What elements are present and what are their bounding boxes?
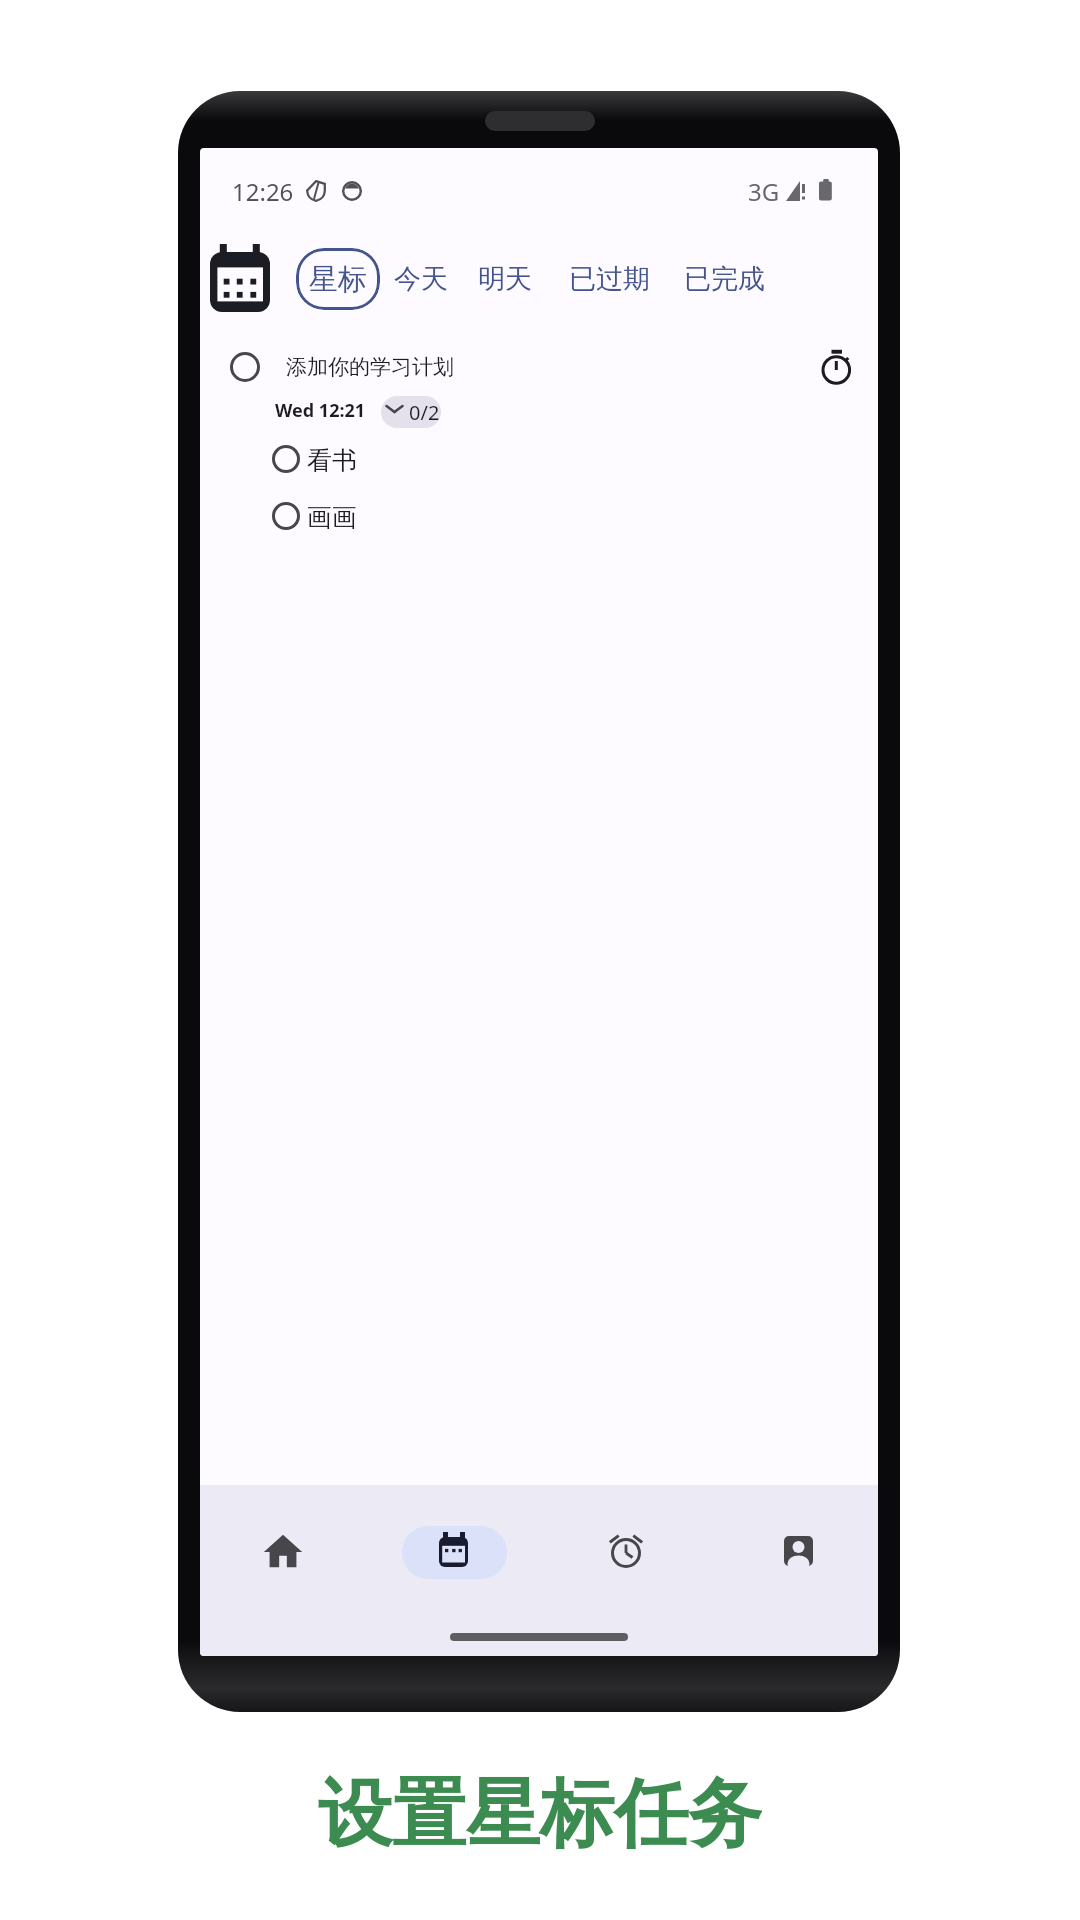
staticText: 3G — [748, 175, 780, 205]
button[interactable] — [402, 1526, 507, 1579]
button[interactable] — [260, 1529, 306, 1575]
button[interactable]: 添加你的学习计划 — [286, 352, 586, 382]
staticText: 0/2 — [409, 399, 440, 426]
staticText: 12:26 — [232, 175, 294, 205]
button[interactable]: 画画 — [307, 502, 427, 530]
button[interactable]: 今天 — [381, 248, 461, 310]
staticText: 添加你的学习计划 — [286, 354, 454, 380]
button[interactable] — [608, 1534, 644, 1570]
button[interactable] — [784, 1536, 813, 1566]
button[interactable]: 星标 — [296, 248, 380, 310]
button[interactable] — [272, 502, 300, 530]
button[interactable]: 明天 — [465, 248, 545, 310]
button[interactable] — [230, 352, 260, 382]
button[interactable]: 已过期 — [554, 248, 664, 310]
staticText: 今天 — [394, 262, 448, 296]
staticText: 星标 — [309, 261, 367, 298]
button[interactable]: 0/2 — [381, 396, 441, 428]
staticText: 已完成 — [684, 262, 765, 296]
button[interactable]: 看书 — [307, 445, 427, 473]
button[interactable]: 已完成 — [669, 248, 779, 310]
staticText: 设置星标任务 — [318, 1768, 762, 1858]
staticText: Wed 12:21 — [275, 398, 366, 420]
staticText: 已过期 — [569, 262, 650, 296]
staticText: 看书 — [307, 445, 357, 473]
button[interactable] — [819, 349, 853, 385]
button[interactable] — [272, 445, 300, 473]
staticText: 画画 — [307, 502, 357, 530]
staticText: 明天 — [478, 262, 532, 296]
